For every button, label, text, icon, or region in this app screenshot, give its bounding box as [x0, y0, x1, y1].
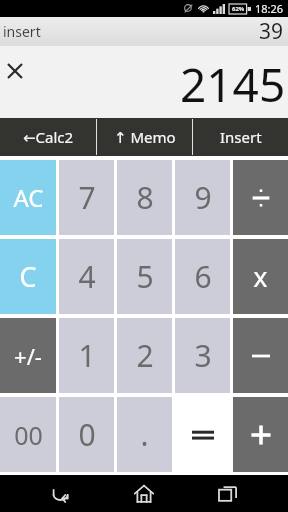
button[interactable]: Recent apps: [204, 475, 252, 512]
button[interactable]: Divide: [233, 160, 288, 235]
button[interactable]: 3: [175, 318, 230, 393]
staticText: .: [140, 414, 149, 455]
button[interactable]: ↑ Memo: [97, 118, 192, 156]
staticText: insert: [3, 22, 41, 41]
staticText: 5: [136, 256, 154, 297]
button[interactable]: Back: [36, 475, 84, 512]
button[interactable]: 8: [117, 160, 172, 235]
button[interactable]: 2: [117, 318, 172, 393]
button[interactable]: [233, 397, 288, 472]
staticText: 3: [194, 335, 212, 376]
button[interactable]: x: [233, 239, 288, 314]
staticText: 00: [14, 418, 43, 452]
button[interactable]: 0: [59, 397, 114, 472]
staticText: 4: [78, 256, 96, 297]
staticText: 9: [194, 177, 212, 218]
button[interactable]: 6: [175, 239, 230, 314]
staticText: 6: [194, 256, 212, 297]
staticText: 8: [136, 177, 154, 218]
button[interactable]: +/-: [0, 318, 56, 393]
staticText: +/-: [14, 341, 42, 371]
button[interactable]: Insert: [193, 118, 288, 156]
staticText: 7: [78, 177, 96, 218]
staticText: AC: [13, 181, 44, 214]
staticText: ←Calc2: [23, 127, 74, 147]
button[interactable]: Home: [120, 475, 168, 512]
staticText: ↑ Memo: [114, 127, 176, 147]
staticText: C: [19, 258, 37, 295]
staticText: x: [253, 258, 268, 295]
staticText: 2145: [180, 53, 286, 116]
staticText: Insert: [220, 127, 262, 147]
button[interactable]: .: [117, 397, 172, 472]
staticText: 62%: [232, 5, 245, 13]
staticText: 0: [78, 414, 96, 455]
button[interactable]: 9: [175, 160, 230, 235]
button[interactable]: 1: [59, 318, 114, 393]
staticText: 39: [259, 17, 284, 46]
button[interactable]: 4: [59, 239, 114, 314]
button[interactable]: 00: [0, 397, 56, 472]
button[interactable]: [175, 397, 230, 472]
button[interactable]: [233, 318, 288, 393]
button[interactable]: 5: [117, 239, 172, 314]
staticText: 1: [78, 335, 96, 376]
staticText: 18:26: [255, 1, 284, 16]
button[interactable]: ←Calc2: [0, 118, 96, 156]
button[interactable]: C: [0, 239, 56, 314]
button[interactable]: AC: [0, 160, 56, 235]
button[interactable]: 7: [59, 160, 114, 235]
staticText: 2: [136, 335, 154, 376]
